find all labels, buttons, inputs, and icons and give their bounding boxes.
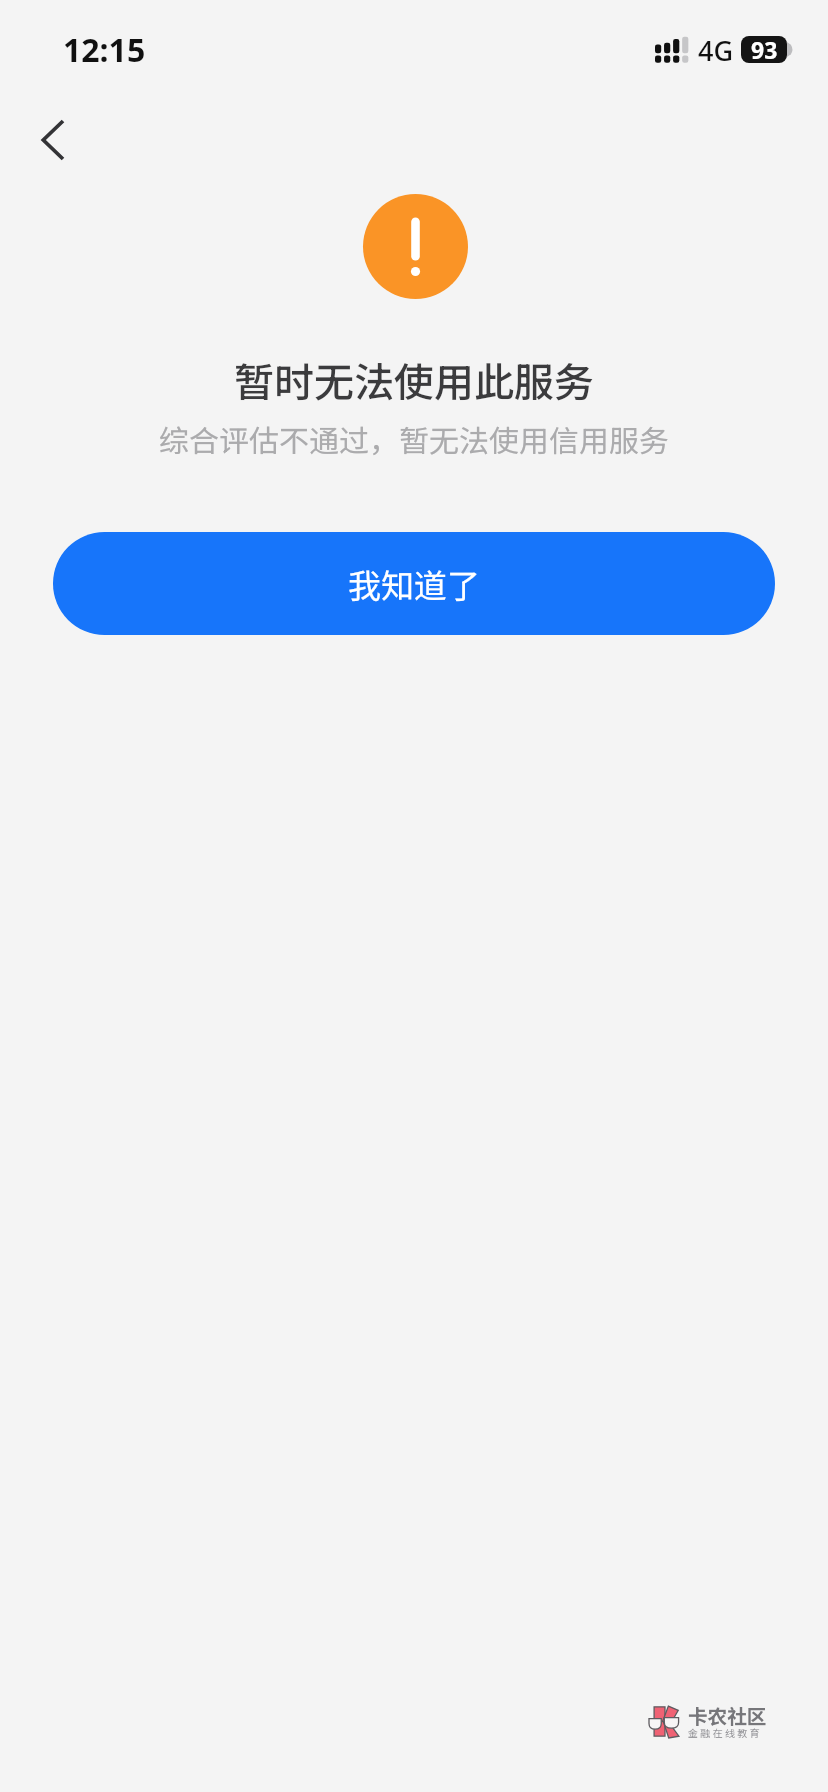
- staticText: 暂时无法使用此服务: [0, 351, 828, 409]
- button[interactable]: Back: [20, 108, 84, 172]
- staticText: 12:15: [63, 28, 146, 72]
- staticText: 4G: [698, 32, 734, 69]
- staticText: 我知道了: [348, 560, 480, 608]
- staticText: 综合评估不通过，暂无法使用信用服务: [0, 417, 828, 460]
- button[interactable]: 我知道了: [53, 532, 775, 635]
- other: Mobile signal: [655, 36, 688, 64]
- staticText: 金融在线教育: [688, 1725, 762, 1739]
- staticText: 卡农社区: [688, 1701, 767, 1729]
- staticText: 93: [751, 36, 778, 61]
